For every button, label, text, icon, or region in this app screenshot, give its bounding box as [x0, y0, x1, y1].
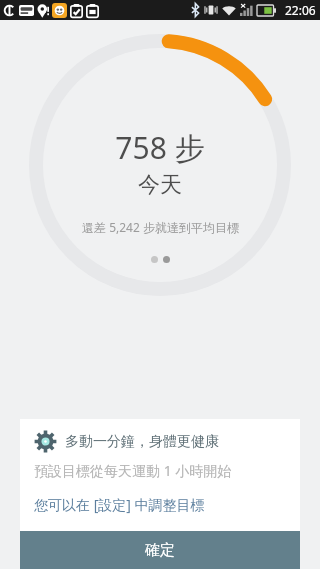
other: Settings: [34, 430, 57, 453]
button[interactable]: 您可以在 [設定] 中調整目標: [34, 495, 286, 514]
staticText: 多動一分鐘，身體更健康: [65, 433, 219, 451]
button[interactable]: 確定: [20, 531, 300, 569]
staticText: 758 步: [115, 127, 205, 168]
staticText: 22:06: [285, 2, 316, 18]
staticText: 您可以在 [設定] 中調整目標: [34, 495, 205, 514]
staticText: 今天: [138, 171, 182, 199]
staticText: 預設目標從每天運動 1 小時開始: [34, 461, 232, 480]
staticText: 確定: [145, 541, 175, 560]
staticText: 還差 5,242 步就達到平均目標: [82, 219, 239, 235]
